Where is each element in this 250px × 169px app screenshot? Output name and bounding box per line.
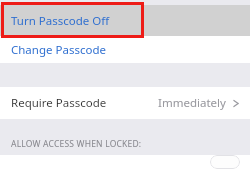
staticText: ALLOW ACCESS WHEN LOCKED: [11, 138, 142, 150]
staticText: Immediately [158, 95, 226, 111]
staticText: Require Passcode [11, 95, 107, 111]
button[interactable]: Change Passcode [0, 36, 250, 63]
button[interactable]: Require Passcode [0, 87, 250, 119]
staticText: Change Passcode [11, 42, 106, 58]
button[interactable]: Turn Passcode Off [0, 5, 250, 36]
button[interactable]: Toggle [0, 155, 250, 169]
staticText: Turn Passcode Off [11, 13, 110, 29]
button[interactable]: Toggle [210, 155, 240, 169]
